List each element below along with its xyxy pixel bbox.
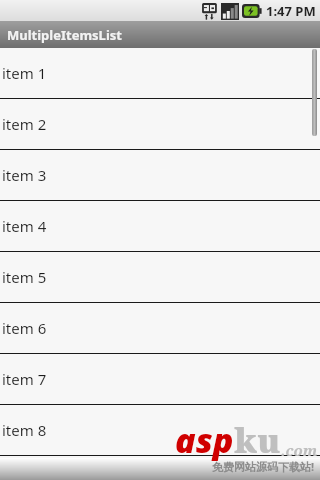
button[interactable]: item 7 [0,354,320,405]
button[interactable]: item 1 [0,48,320,99]
staticText: item 2 [2,114,47,134]
button[interactable]: item 2 [0,99,320,150]
staticText: ku [234,417,281,463]
staticText: .com [281,440,318,460]
staticText: item 5 [2,267,47,287]
staticText: item 8 [2,420,47,440]
button[interactable]: item 6 [0,303,320,354]
staticText: item 4 [2,216,47,236]
staticText: item 1 [2,63,47,83]
staticText: item 7 [2,369,47,389]
staticText: item 3 [2,165,47,185]
staticText: 免费网站源码下载站! [211,459,314,474]
button[interactable]: item 5 [0,252,320,303]
button[interactable]: item 4 [0,201,320,252]
button[interactable]: item 3 [0,150,320,201]
staticText: asp [175,417,234,463]
staticText: 1:47 PM [266,2,316,20]
button[interactable]: item 8 [0,405,320,456]
staticText: MultipleItemsList [7,26,122,44]
staticText: item 6 [2,318,47,338]
